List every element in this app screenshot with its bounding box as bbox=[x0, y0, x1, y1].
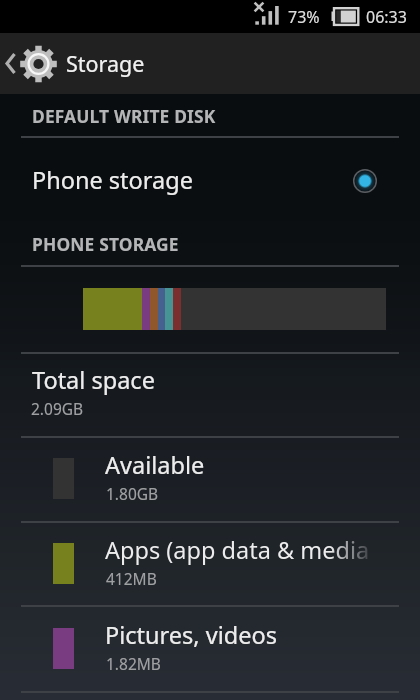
staticText: 2.09GB bbox=[31, 398, 84, 419]
button[interactable] bbox=[0, 521, 420, 605]
staticText: Phone storage bbox=[32, 164, 193, 196]
staticText: 73% bbox=[288, 6, 320, 28]
staticText: PHONE STORAGE bbox=[32, 232, 179, 256]
staticText: Pictures, videos bbox=[105, 619, 395, 651]
staticText: Available bbox=[105, 449, 395, 481]
staticText: 1.82MB bbox=[106, 653, 161, 674]
staticText: Total space bbox=[32, 364, 155, 396]
button[interactable] bbox=[0, 436, 420, 520]
button[interactable] bbox=[0, 138, 420, 228]
staticText: DEFAULT WRITE DISK bbox=[32, 104, 216, 128]
button[interactable] bbox=[0, 606, 420, 690]
staticText: 06:33 bbox=[366, 6, 407, 28]
button[interactable]: Navigate up - Storage bbox=[0, 33, 420, 94]
staticText: Storage bbox=[66, 49, 145, 78]
staticText: 1.80GB bbox=[106, 483, 159, 504]
button[interactable] bbox=[0, 353, 420, 436]
staticText: Apps (app data & media content) bbox=[105, 534, 376, 566]
staticText: 412MB bbox=[106, 568, 157, 589]
